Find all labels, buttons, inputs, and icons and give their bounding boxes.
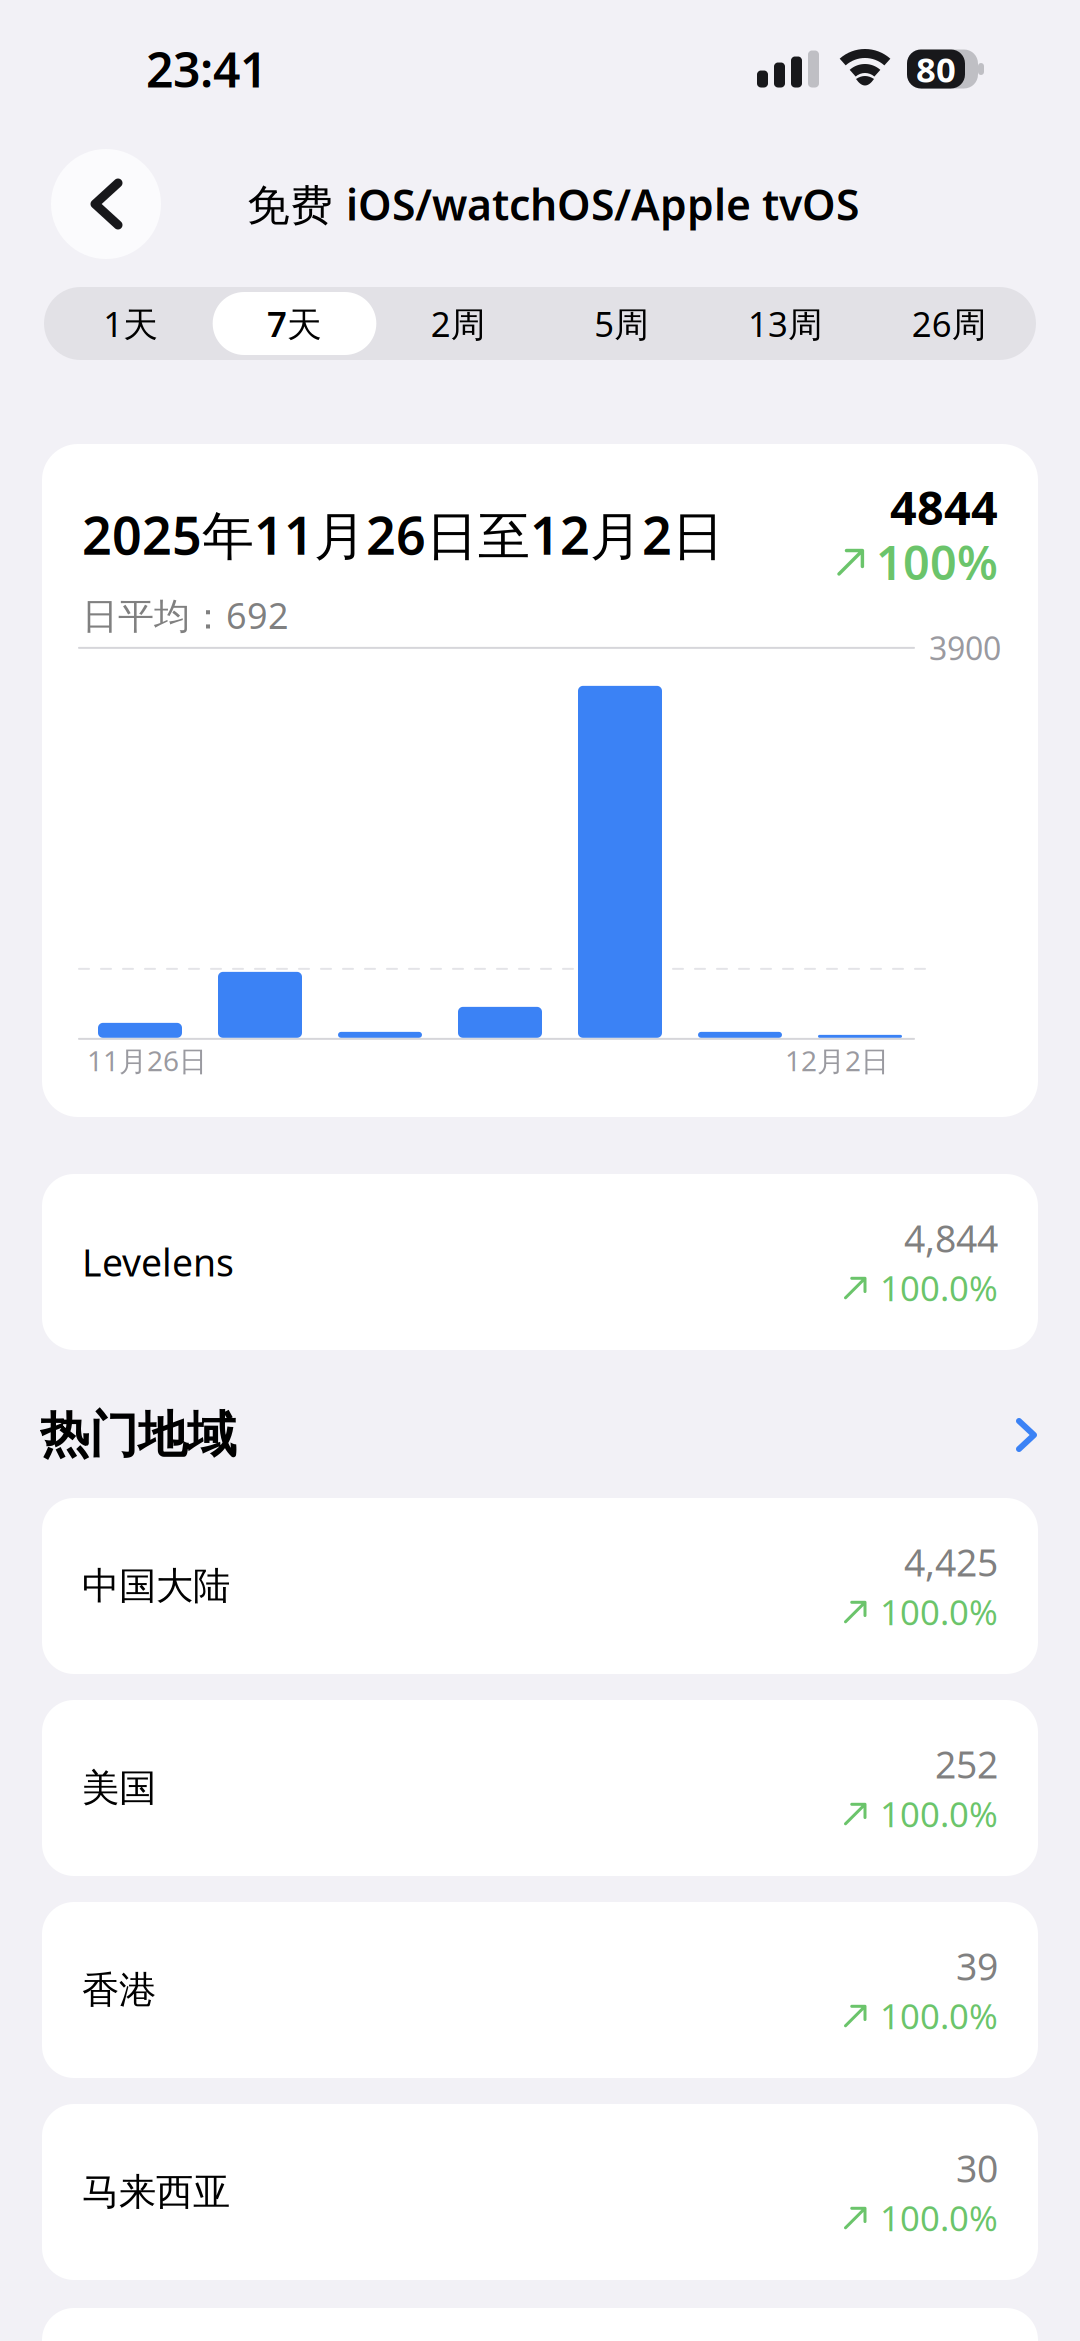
button[interactable]: 马来西亚 [42, 2104, 1038, 2280]
staticText: 中国大陆 [82, 1563, 230, 1609]
staticText: 13周 [748, 300, 823, 346]
staticText: 100% [876, 531, 998, 593]
staticText: 1天 [103, 300, 158, 346]
staticText: 马来西亚 [82, 2169, 230, 2215]
button[interactable]: Levelens [42, 1174, 1038, 1350]
staticText: 100.0% [880, 1589, 998, 1635]
staticText: 39 [956, 1941, 998, 1991]
staticText: 7天 [267, 300, 322, 346]
button[interactable]: 美国 [42, 1700, 1038, 1876]
staticText: 3900 [929, 627, 1001, 669]
button[interactable]: 26周 [867, 292, 1031, 355]
staticText: 11月26日 [87, 1042, 207, 1079]
staticText: 日平均：692 [82, 591, 289, 639]
staticText: 26周 [912, 300, 987, 346]
button[interactable]: 1天 [49, 292, 213, 355]
staticText: 热门地域 [40, 1405, 236, 1465]
staticText: 30 [956, 2143, 998, 2193]
staticText: 252 [935, 1739, 998, 1789]
staticText: 2025年11月26日至12月2日 [82, 500, 724, 569]
staticText: 4,844 [904, 1213, 998, 1263]
staticText: 100.0% [880, 1993, 998, 2039]
staticText: 100.0% [880, 2195, 998, 2241]
staticText: 12月2日 [785, 1042, 889, 1079]
staticText: 100.0% [880, 1791, 998, 1837]
button[interactable]: 2周 [376, 292, 540, 355]
staticText: 100.0% [880, 1265, 998, 1311]
button[interactable]: 中国大陆 [42, 1498, 1038, 1674]
button[interactable]: All territories [1015, 1417, 1038, 1453]
button[interactable]: 13周 [704, 292, 867, 355]
button[interactable]: 5周 [540, 292, 704, 355]
staticText: 4,425 [904, 1537, 998, 1587]
staticText: 香港 [82, 1967, 156, 2013]
staticText: 免费 iOS/watchOS/Apple tvOS [247, 176, 859, 232]
button[interactable]: 香港 [42, 1902, 1038, 2078]
staticText: Levelens [82, 1237, 234, 1287]
staticText: 2周 [431, 300, 486, 346]
staticText: 5周 [594, 300, 649, 346]
staticText: 80 [916, 46, 956, 92]
button[interactable]: Back [51, 149, 161, 259]
staticText: 美国 [82, 1765, 156, 1811]
staticText: 23:41 [146, 37, 267, 101]
button[interactable]: 7天 [213, 292, 376, 355]
staticText: 4844 [890, 476, 998, 538]
